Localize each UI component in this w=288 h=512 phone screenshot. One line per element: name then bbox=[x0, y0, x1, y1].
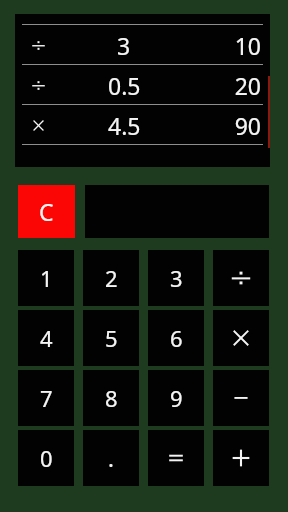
staticText: 7 bbox=[40, 383, 53, 413]
staticText: 3 bbox=[117, 30, 131, 61]
staticText: 2 bbox=[105, 263, 118, 293]
staticText: 9 bbox=[170, 383, 183, 413]
button[interactable]: Plus bbox=[213, 430, 269, 486]
button[interactable]: 4 bbox=[18, 310, 74, 366]
button[interactable]: Multiply bbox=[213, 310, 269, 366]
button[interactable]: Minus bbox=[213, 370, 269, 426]
staticText: C bbox=[39, 196, 54, 227]
staticText: 5 bbox=[105, 323, 118, 353]
staticText: 20 bbox=[234, 70, 261, 101]
staticText: 3 bbox=[170, 263, 183, 293]
button[interactable]: Equals bbox=[148, 430, 204, 486]
button[interactable]: 1 bbox=[18, 250, 74, 306]
staticText: 6 bbox=[170, 323, 183, 353]
staticText: 4 bbox=[40, 323, 53, 353]
button[interactable]: 7 bbox=[18, 370, 74, 426]
button[interactable]: 0 bbox=[18, 430, 74, 486]
staticText: 10 bbox=[234, 30, 261, 61]
staticText: 0 bbox=[40, 443, 53, 473]
button[interactable]: 6 bbox=[148, 310, 204, 366]
staticText: 0.5 bbox=[108, 70, 141, 101]
button[interactable]: 8 bbox=[83, 370, 139, 426]
button[interactable]: 2 bbox=[83, 250, 139, 306]
staticText: 1 bbox=[40, 263, 53, 293]
staticText: . bbox=[108, 443, 114, 473]
button[interactable]: 3 bbox=[148, 250, 204, 306]
staticText: 4.5 bbox=[108, 110, 141, 141]
button[interactable]: 5 bbox=[83, 310, 139, 366]
button[interactable]: C bbox=[18, 185, 75, 238]
button[interactable]: . bbox=[83, 430, 139, 486]
button[interactable]: 9 bbox=[148, 370, 204, 426]
staticText: 90 bbox=[234, 110, 261, 141]
staticText: 8 bbox=[105, 383, 118, 413]
button[interactable]: Divide bbox=[213, 250, 269, 306]
